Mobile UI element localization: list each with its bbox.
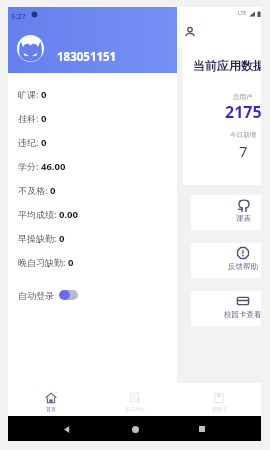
staticText: 挂科: — [18, 112, 41, 124]
button[interactable]: 首页 — [8, 387, 93, 416]
staticText: 2175 — [225, 101, 261, 123]
button[interactable]: 晚自习缺勤: — [8, 250, 261, 274]
button[interactable]: 不及格: — [8, 178, 261, 202]
button[interactable]: 旷课: — [8, 82, 261, 106]
button[interactable]: Recents — [193, 420, 211, 438]
staticText: 0 — [41, 112, 47, 125]
staticText: 今日新增 — [230, 131, 256, 139]
button[interactable]: 课表 — [191, 195, 261, 230]
staticText: 0 — [50, 184, 56, 197]
staticText: 0.00 — [59, 208, 78, 221]
staticText: 总用户 — [233, 93, 253, 101]
button[interactable]: 自动登录 — [8, 284, 261, 306]
button[interactable]: 校园卡 — [177, 387, 261, 416]
staticText: 违纪: — [18, 136, 41, 148]
button[interactable]: 学工中心 — [93, 387, 177, 416]
button[interactable]: Back — [58, 420, 76, 438]
staticText: 校园卡 — [212, 406, 227, 412]
staticText: 7 — [239, 141, 248, 161]
staticText: 平均成绩: — [18, 208, 59, 220]
staticText: 早操缺勤: — [18, 232, 59, 244]
staticText: LTE — [238, 10, 247, 17]
button[interactable]: 违纪: — [8, 130, 261, 154]
button[interactable]: Home — [126, 420, 144, 438]
staticText: 反馈帮助 — [228, 262, 258, 271]
staticText: 课表 — [236, 214, 251, 223]
staticText: 首页 — [46, 406, 56, 412]
other: Profile — [184, 26, 196, 38]
staticText: 0 — [59, 232, 65, 245]
staticText: 0 — [68, 256, 74, 269]
staticText: 183051151 — [57, 49, 117, 65]
staticText: 自动登录 — [18, 290, 54, 301]
staticText: 0 — [41, 88, 47, 101]
staticText: 晚自习缺勤: — [18, 256, 68, 268]
staticText: 46.00 — [41, 160, 66, 173]
button[interactable]: 挂科: — [8, 106, 261, 130]
button[interactable]: 学分: — [8, 154, 261, 178]
button[interactable]: 平均成绩: — [8, 202, 261, 226]
staticText: 当前应用数据 — [193, 58, 261, 73]
staticText: 学分: — [18, 160, 41, 172]
staticText: 旷课: — [18, 88, 41, 100]
button[interactable]: 早操缺勤: — [8, 226, 261, 250]
staticText: 0 — [41, 136, 47, 149]
staticText: 学工中心 — [125, 406, 145, 412]
button[interactable]: 反馈帮助 — [191, 243, 261, 278]
staticText: 校园卡查看 — [224, 310, 261, 319]
button[interactable]: 校园卡查看 — [191, 291, 261, 326]
staticText: 不及格: — [18, 184, 50, 196]
staticText: 5:27 — [11, 11, 26, 21]
